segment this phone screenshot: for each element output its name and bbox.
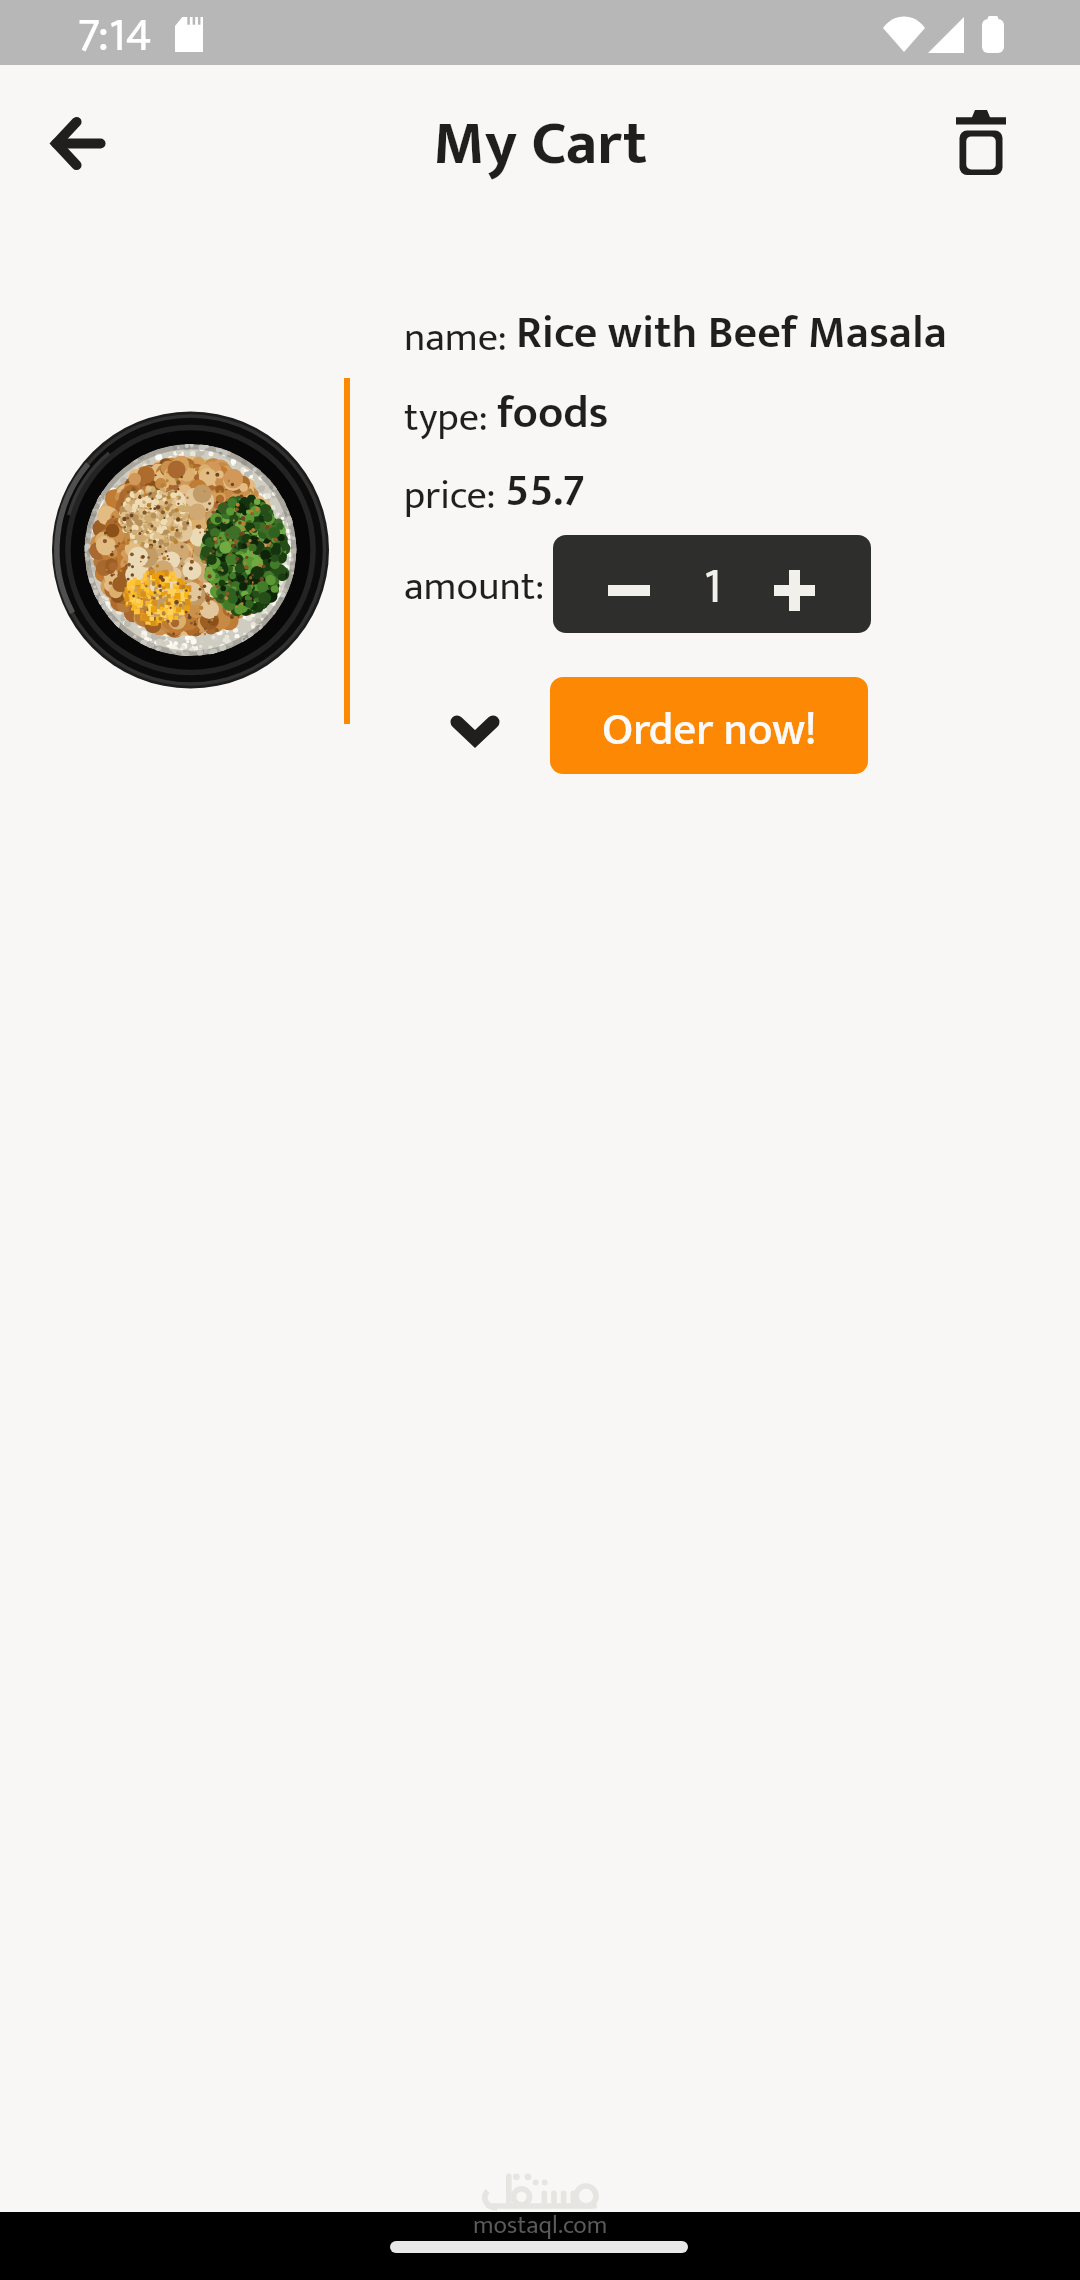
staticText: type:: [404, 385, 497, 451]
staticText: name:: [404, 305, 516, 371]
staticText: mostaql.com: [473, 2205, 608, 2247]
staticText: Rice with Beef Masala: [516, 295, 947, 371]
staticText: foods: [497, 375, 609, 451]
button[interactable]: Decrease amount: [573, 541, 685, 633]
button[interactable]: Show more: [435, 698, 515, 762]
button[interactable]: Order now!: [550, 677, 868, 774]
button[interactable]: Rice with Beef Masala photo: [52, 411, 329, 689]
staticText: My Cart: [433, 93, 647, 196]
staticText: 55.7: [505, 453, 586, 529]
staticText: price:: [404, 463, 505, 529]
button[interactable]: Back: [25, 91, 129, 195]
button[interactable]: Increase amount: [738, 541, 850, 633]
staticText: 7:14: [77, 0, 152, 61]
button[interactable]: Delete cart: [929, 90, 1033, 194]
staticText: 1: [693, 545, 732, 628]
staticText: amount:: [404, 554, 545, 620]
staticText: Order now!: [602, 693, 817, 768]
